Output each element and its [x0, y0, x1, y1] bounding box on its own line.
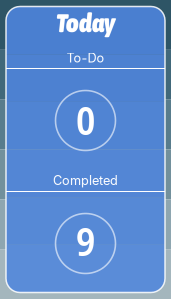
- staticText: To-Do: [66, 50, 104, 66]
- staticText: 9: [76, 213, 95, 268]
- staticText: Today: [56, 7, 115, 38]
- staticText: 0: [76, 92, 95, 147]
- staticText: Completed: [53, 173, 118, 188]
